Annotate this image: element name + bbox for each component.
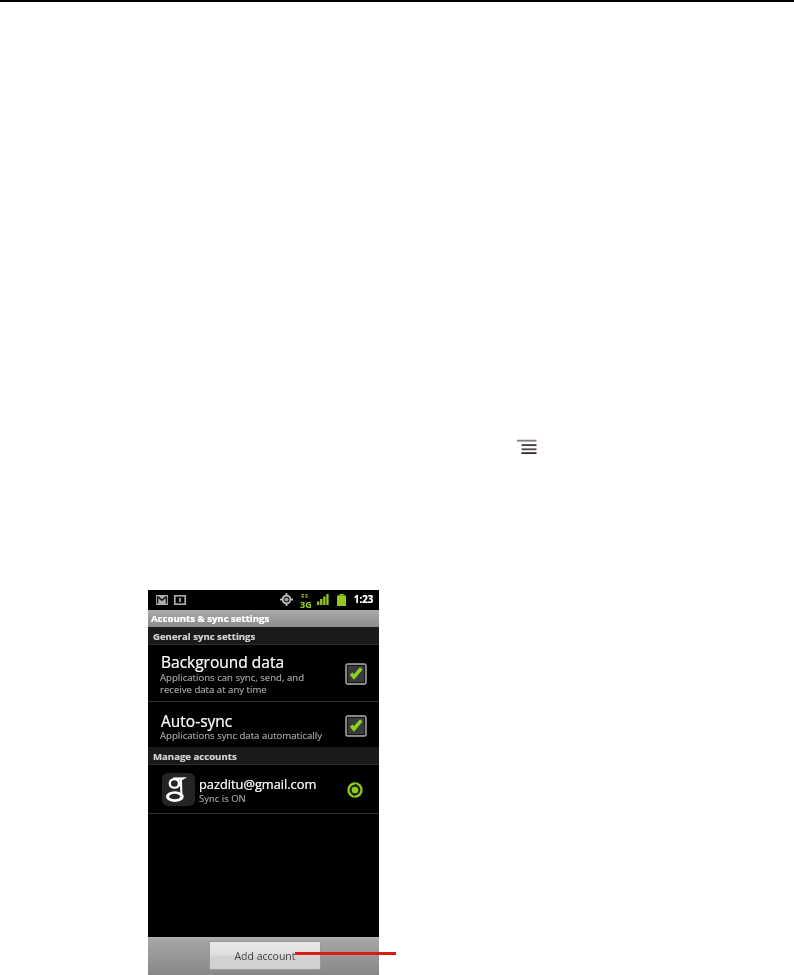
button[interactable]: Toggle	[345, 715, 367, 737]
staticText: Applications can sync, send, and	[160, 671, 305, 684]
button[interactable]: pazditu@gmail.com	[148, 767, 379, 813]
staticText: Background data	[161, 651, 285, 672]
staticText: pazditu@gmail.com	[199, 775, 317, 792]
staticText: Accounts & sync settings	[151, 612, 270, 625]
staticText: General sync settings	[153, 630, 256, 643]
button[interactable]: Auto-sync	[148, 702, 379, 747]
button[interactable]: Toggle	[345, 663, 367, 685]
staticText: Sync is ON	[199, 792, 246, 805]
other: Sync status	[347, 782, 363, 798]
staticText: Add account	[234, 949, 296, 963]
staticText: Applications sync data automatically	[160, 729, 322, 742]
staticText: Manage accounts	[153, 750, 237, 763]
button[interactable]: Add account	[210, 942, 320, 969]
staticText: 3G	[300, 598, 312, 610]
staticText: 1:23	[354, 593, 374, 606]
staticText: Auto-sync	[161, 710, 233, 731]
staticText: receive data at any time	[160, 683, 267, 696]
button[interactable]: Background data	[148, 645, 379, 701]
